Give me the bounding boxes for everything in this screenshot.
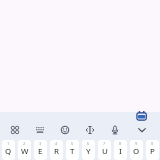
- staticText: 9: [135, 141, 138, 146]
- button[interactable]: 9: [130, 140, 143, 160]
- staticText: Y: [86, 146, 91, 157]
- staticText: T: [70, 146, 75, 157]
- button[interactable]: 8: [114, 140, 127, 160]
- button[interactable]: [31, 121, 49, 139]
- staticText: 5: [71, 141, 74, 146]
- staticText: Q: [5, 146, 12, 157]
- staticText: 6: [87, 141, 90, 146]
- button[interactable]: [56, 121, 74, 139]
- staticText: 0: [151, 141, 154, 146]
- button[interactable]: 6: [82, 140, 95, 160]
- staticText: 2: [23, 141, 26, 146]
- staticText: 1: [7, 141, 10, 146]
- button[interactable]: [133, 121, 151, 139]
- staticText: 3: [39, 141, 42, 146]
- staticText: W: [21, 146, 29, 157]
- button[interactable]: [6, 121, 24, 139]
- staticText: I: [119, 146, 122, 157]
- button[interactable]: 3: [34, 140, 47, 160]
- staticText: 4: [55, 141, 58, 146]
- staticText: R: [54, 146, 59, 157]
- button[interactable]: [106, 121, 124, 139]
- staticText: O: [133, 146, 140, 157]
- button[interactable]: [136, 110, 148, 122]
- staticText: E: [38, 146, 43, 157]
- button[interactable]: [81, 121, 99, 139]
- button[interactable]: 2: [18, 140, 31, 160]
- button[interactable]: 0: [146, 140, 159, 160]
- staticText: P: [150, 146, 155, 157]
- button[interactable]: 4: [50, 140, 63, 160]
- staticText: U: [102, 146, 108, 157]
- staticText: 8: [119, 141, 122, 146]
- staticText: 7: [103, 141, 106, 146]
- button[interactable]: 1: [2, 140, 15, 160]
- button[interactable]: 5: [66, 140, 79, 160]
- button[interactable]: 7: [98, 140, 111, 160]
